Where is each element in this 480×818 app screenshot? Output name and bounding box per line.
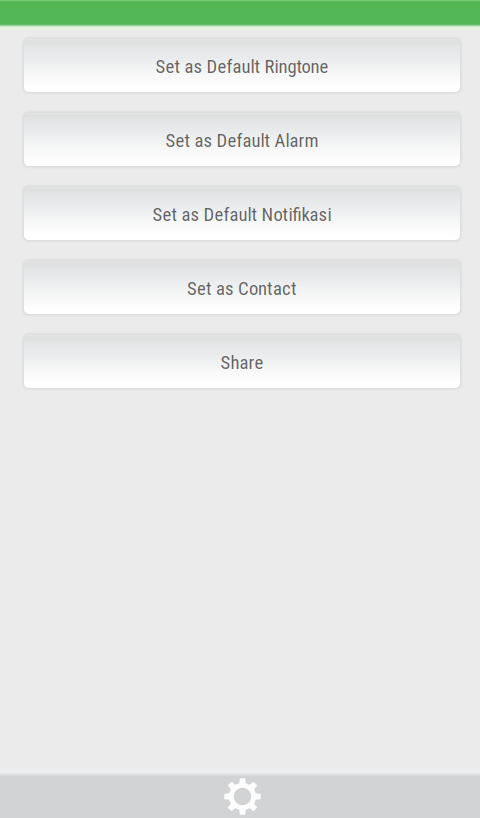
button[interactable]: Settings <box>205 774 280 818</box>
staticText: Set as Default Ringtone <box>155 56 328 77</box>
staticText: Set as Default Notifikasi <box>152 204 331 225</box>
button[interactable]: Set as Default Notifikasi <box>21 184 463 243</box>
button[interactable]: Set as Contact <box>21 258 463 317</box>
button[interactable]: Set as Default Alarm <box>21 110 463 169</box>
staticText: Set as Default Alarm <box>165 130 318 151</box>
button[interactable]: Share <box>21 332 463 391</box>
button[interactable]: Set as Default Ringtone <box>21 36 463 95</box>
staticText: Set as Contact <box>187 278 297 299</box>
staticText: Share <box>220 352 263 373</box>
